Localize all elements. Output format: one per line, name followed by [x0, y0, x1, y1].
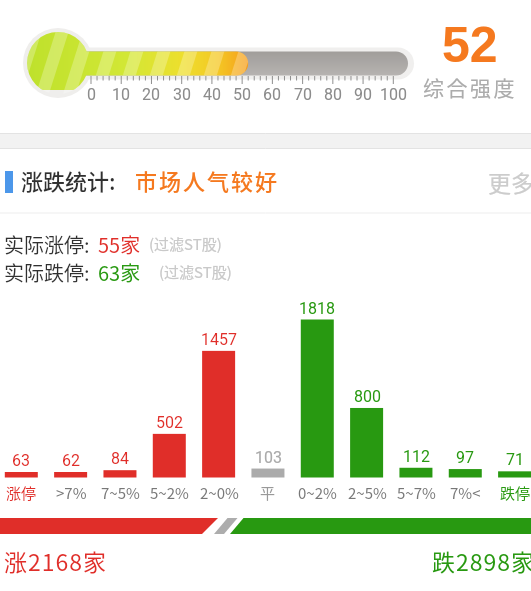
staticText: 800: [354, 387, 381, 406]
staticText: 涨跌统计:: [21, 164, 116, 196]
staticText: 1457: [201, 330, 237, 349]
staticText: 0: [87, 85, 96, 104]
staticText: >7%: [56, 482, 87, 504]
staticText: 市场人气较好: [135, 164, 280, 196]
staticText: 40: [203, 85, 221, 104]
staticText: 实际涨停:: [4, 230, 90, 259]
staticText: 5~7%: [397, 482, 436, 504]
staticText: 502: [156, 413, 183, 432]
staticText: 5~2%: [150, 482, 189, 504]
staticText: 70: [294, 85, 312, 104]
staticText: 100: [380, 85, 407, 104]
staticText: 7~5%: [101, 482, 140, 504]
staticText: 112: [403, 447, 430, 466]
staticText: 80: [324, 85, 342, 104]
button[interactable]: 更多: [488, 165, 531, 198]
staticText: 55家: [98, 230, 141, 259]
staticText: (过滤ST股): [159, 261, 232, 283]
staticText: 平: [260, 482, 276, 504]
staticText: 实际跌停:: [4, 258, 90, 287]
staticText: 0~2%: [298, 482, 337, 504]
staticText: 71: [506, 450, 524, 469]
staticText: 52: [442, 17, 498, 73]
staticText: 90: [354, 85, 372, 104]
staticText: 涨2168家: [4, 544, 108, 577]
staticText: 涨停: [6, 482, 37, 504]
staticText: 62: [62, 451, 80, 470]
staticText: 50: [233, 85, 251, 104]
staticText: 综合强度: [423, 72, 517, 102]
staticText: 20: [142, 85, 160, 104]
staticText: 更多: [488, 165, 531, 198]
staticText: 10: [112, 85, 130, 104]
staticText: 84: [111, 449, 129, 468]
staticText: 60: [263, 85, 281, 104]
staticText: 2~5%: [348, 482, 387, 504]
staticText: 7%<: [450, 482, 481, 504]
staticText: (过滤ST股): [149, 233, 222, 255]
staticText: 103: [255, 448, 282, 467]
staticText: 30: [173, 85, 191, 104]
staticText: 1818: [299, 299, 335, 318]
staticText: 跌2898家: [432, 544, 531, 577]
staticText: 97: [456, 448, 474, 467]
staticText: 63: [12, 451, 30, 470]
staticText: 63家: [98, 258, 141, 287]
staticText: 跌停: [500, 482, 531, 504]
staticText: 2~0%: [200, 482, 239, 504]
